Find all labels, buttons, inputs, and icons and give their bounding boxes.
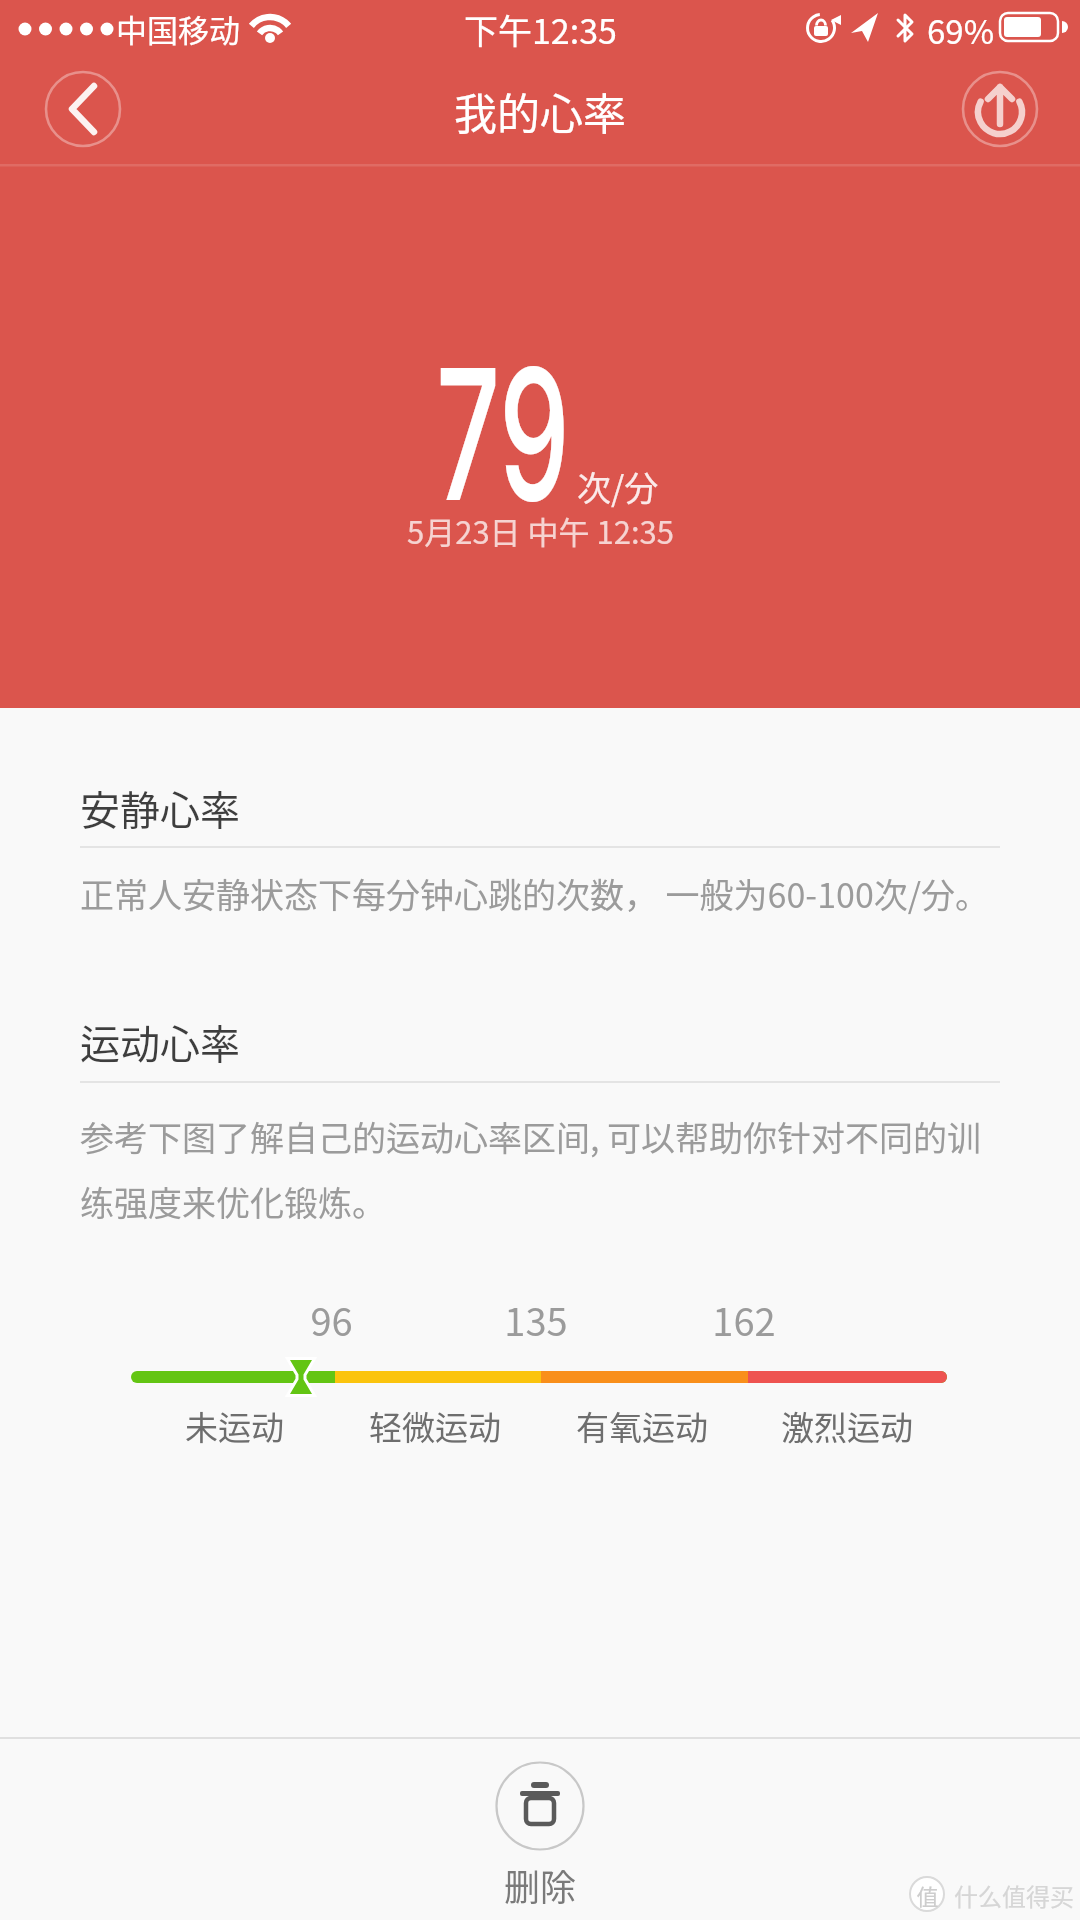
staticText: 值 — [916, 1879, 939, 1911]
staticText: 69% — [927, 6, 995, 54]
staticText: 未运动 — [185, 1402, 284, 1450]
staticText: 79 — [436, 325, 570, 544]
staticText: 中国移动 — [116, 6, 240, 51]
staticText: 参考下图了解自己的运动心率区间, 可以帮助你针对不同的训练强度来优化锻炼。 — [80, 1112, 1010, 1226]
staticText: 有氧运动 — [576, 1402, 708, 1450]
staticText: 轻微运动 — [369, 1402, 501, 1450]
staticText: 162 — [712, 1292, 776, 1347]
button[interactable] — [490, 1756, 590, 1906]
staticText: 我的心率 — [454, 80, 626, 142]
button[interactable] — [46, 72, 120, 146]
button[interactable] — [963, 72, 1037, 146]
staticText: 安静心率 — [80, 779, 240, 837]
staticText: 下午12:35 — [464, 5, 617, 54]
staticText: 运动心率 — [80, 1013, 240, 1071]
staticText: 什么值得买 — [954, 1878, 1074, 1913]
staticText: 正常人安静状态下每分钟心跳的次数， 一般为60-100次/分。 — [80, 869, 990, 918]
staticText: 删除 — [504, 1859, 577, 1911]
staticText: 5月23日 中午 12:35 — [407, 508, 674, 553]
staticText: 次/分 — [577, 462, 659, 511]
staticText: 激烈运动 — [781, 1402, 913, 1450]
staticText: 96 — [310, 1292, 353, 1347]
staticText: 135 — [504, 1292, 568, 1347]
